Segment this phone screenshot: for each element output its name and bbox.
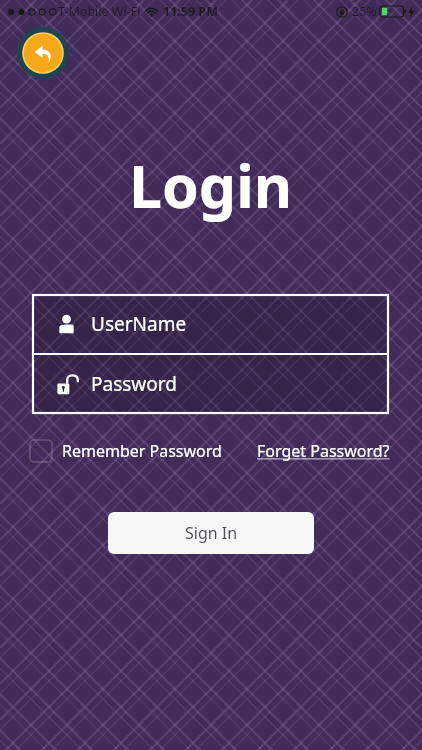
- staticText: T-Mobile Wi-Fi: [58, 3, 141, 20]
- button[interactable]: UserName: [33, 295, 388, 353]
- staticText: Remember Password: [62, 440, 222, 462]
- button[interactable]: Password: [33, 355, 388, 413]
- button[interactable]: Forget Password?: [257, 440, 390, 462]
- staticText: 25%: [352, 3, 377, 20]
- staticText: 11:59 PM: [163, 3, 218, 20]
- staticText: Sign In: [185, 522, 238, 544]
- staticText: Login: [129, 145, 293, 225]
- staticText: UserName: [91, 311, 187, 337]
- button[interactable]: Remember Password: [30, 440, 222, 462]
- staticText: Forget Password?: [257, 440, 390, 462]
- button[interactable]: Back: [17, 27, 69, 79]
- button[interactable]: Sign In: [108, 512, 314, 554]
- staticText: Password: [91, 371, 177, 397]
